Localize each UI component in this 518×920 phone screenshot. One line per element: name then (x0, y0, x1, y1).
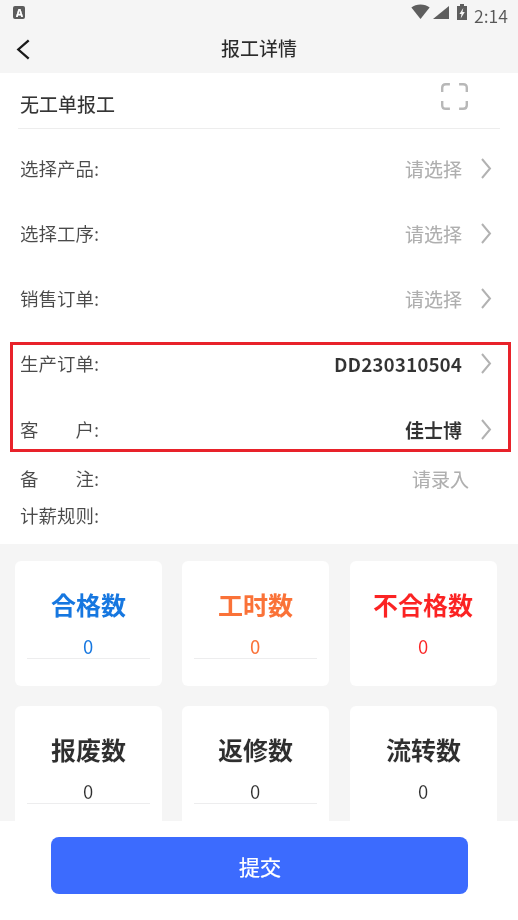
button[interactable]: 提交 (51, 837, 468, 894)
staticText: 2:14 (474, 3, 509, 28)
staticText: 0 (418, 633, 429, 660)
staticText: DD230310504 (334, 350, 463, 378)
staticText: 工时数 (218, 586, 294, 622)
button[interactable]: 选择工序: (0, 201, 518, 266)
button[interactable]: 生产订单: (0, 331, 518, 396)
staticText: 选择工序: (20, 220, 100, 247)
button[interactable]: 返修数 (182, 706, 329, 831)
button[interactable]: 不合格数 (350, 561, 497, 686)
staticText: 备 注: (20, 465, 100, 492)
button[interactable]: Back (3, 27, 43, 73)
staticText: 0 (250, 633, 261, 660)
staticText: 报废数 (51, 731, 127, 767)
staticText: 计薪规则: (20, 502, 100, 529)
staticText: 客 户: (20, 416, 100, 443)
button[interactable]: 客 户: (0, 397, 518, 462)
staticText: 佳士博 (405, 416, 463, 444)
staticText: 请选择 (405, 220, 463, 248)
button[interactable]: 选择产品: (0, 136, 518, 201)
button[interactable]: 工时数 (182, 561, 329, 686)
button[interactable]: 合格数 (15, 561, 162, 686)
staticText: 0 (250, 778, 261, 805)
staticText: 选择产品: (20, 155, 100, 182)
button[interactable]: Scan QR code (438, 80, 470, 112)
staticText: 0 (83, 633, 94, 660)
staticText: 0 (83, 778, 94, 805)
staticText: 合格数 (51, 586, 127, 622)
staticText: 0 (418, 778, 429, 805)
staticText: 生产订单: (20, 350, 100, 377)
button[interactable]: 报废数 (15, 706, 162, 831)
staticText: 提交 (239, 851, 281, 881)
staticText: 销售订单: (20, 285, 100, 312)
staticText: 不合格数 (373, 586, 474, 622)
staticText: 无工单报工 (20, 90, 116, 118)
staticText: 返修数 (218, 731, 294, 767)
button[interactable]: 流转数 (350, 706, 497, 831)
staticText: 请选择 (405, 285, 463, 313)
staticText: 报工详情 (221, 34, 298, 62)
staticText: 请录入 (412, 465, 470, 493)
staticText: A (16, 6, 23, 19)
staticText: 请选择 (405, 155, 463, 183)
button[interactable]: 销售订单: (0, 266, 518, 331)
staticText: 流转数 (386, 731, 462, 767)
button[interactable]: 无工单报工 (0, 73, 518, 128)
